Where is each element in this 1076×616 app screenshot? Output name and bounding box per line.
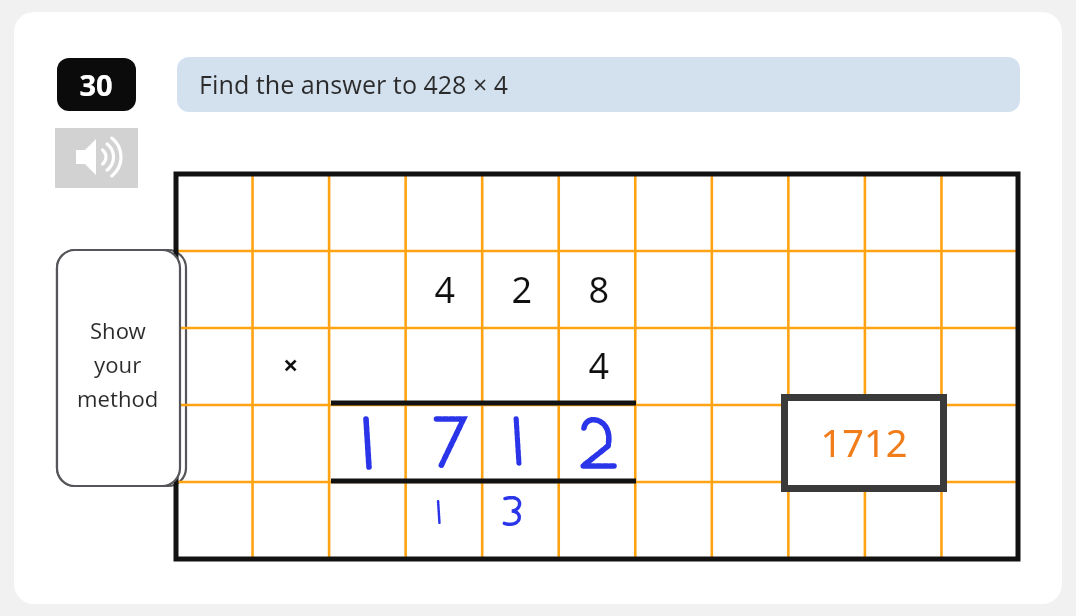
button[interactable]: Answer 1712 [781,394,947,492]
button[interactable]: Question 30 [57,58,136,111]
button[interactable]: Working grid [176,174,1018,559]
button[interactable]: Play question audio [55,128,138,188]
